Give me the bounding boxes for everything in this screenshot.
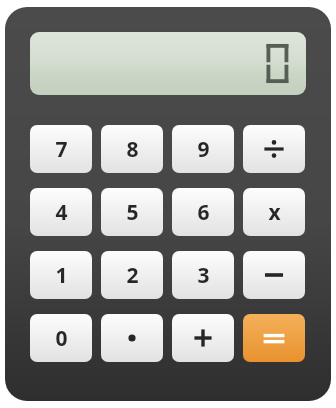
staticText: 8 [126,135,139,164]
staticText: 6 [197,198,210,227]
button[interactable]: 1 [30,251,92,299]
button[interactable]: 8 [101,125,163,173]
staticText: 5 [126,198,139,227]
staticText: x [268,198,281,227]
button[interactable] [243,251,305,299]
button[interactable]: 2 [101,251,163,299]
staticText: 9 [197,135,210,164]
button[interactable]: x [243,188,305,236]
staticText: 4 [55,198,68,227]
button[interactable]: 0 [30,314,92,362]
button[interactable]: 6 [172,188,234,236]
button[interactable]: 3 [172,251,234,299]
staticText: 0 [55,324,68,353]
button[interactable] [243,125,305,173]
button[interactable] [243,314,305,362]
button[interactable] [101,314,163,362]
button[interactable]: 7 [30,125,92,173]
button[interactable]: 4 [30,188,92,236]
button[interactable]: 5 [101,188,163,236]
staticText: 7 [55,135,68,164]
button[interactable] [172,314,234,362]
button[interactable]: 9 [172,125,234,173]
staticText: 3 [197,261,210,290]
staticText: 2 [126,261,139,290]
staticText: 1 [55,261,68,290]
